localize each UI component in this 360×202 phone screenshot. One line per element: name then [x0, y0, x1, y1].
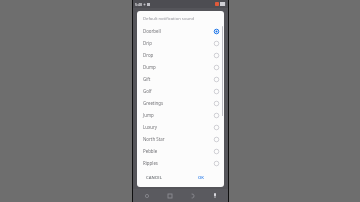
button[interactable]: Jump [137, 109, 224, 121]
staticText: Drop [143, 52, 214, 58]
button[interactable]: Pebble [137, 145, 224, 157]
staticText: 5:48 [135, 2, 142, 7]
button[interactable]: Ripples [137, 157, 224, 169]
button[interactable]: Assistant [210, 191, 219, 200]
staticText: Golf [143, 88, 214, 94]
staticText: Doorbell [143, 28, 214, 34]
button[interactable]: Dump [137, 61, 224, 73]
staticText: Greetings [143, 100, 214, 106]
button[interactable]: OK [192, 173, 210, 183]
staticText: Gift [143, 76, 214, 82]
button[interactable]: Golf [137, 85, 224, 97]
button[interactable]: Drip [137, 37, 224, 49]
staticText: Drip [143, 40, 214, 46]
staticText: North Star [143, 136, 214, 142]
staticText: CANCEL [146, 175, 162, 181]
staticText: Dump [143, 64, 214, 70]
staticText: Pebble [143, 148, 214, 154]
staticText: OK [198, 175, 204, 181]
staticText: Jump [143, 112, 214, 118]
button[interactable]: Recent apps [165, 191, 174, 200]
button[interactable]: North Star [137, 133, 224, 145]
staticText: Default notification sound [143, 16, 195, 22]
button[interactable]: Gift [137, 73, 224, 85]
button[interactable]: Doorbell [137, 25, 224, 37]
staticText: Luxury [143, 124, 214, 130]
button[interactable]: Back [187, 191, 196, 200]
button[interactable]: Home [142, 191, 151, 200]
staticText: Ripples [143, 160, 214, 166]
button[interactable]: Greetings [137, 97, 224, 109]
button[interactable]: CANCEL [143, 173, 165, 183]
button[interactable]: Drop [137, 49, 224, 61]
button[interactable]: Luxury [137, 121, 224, 133]
